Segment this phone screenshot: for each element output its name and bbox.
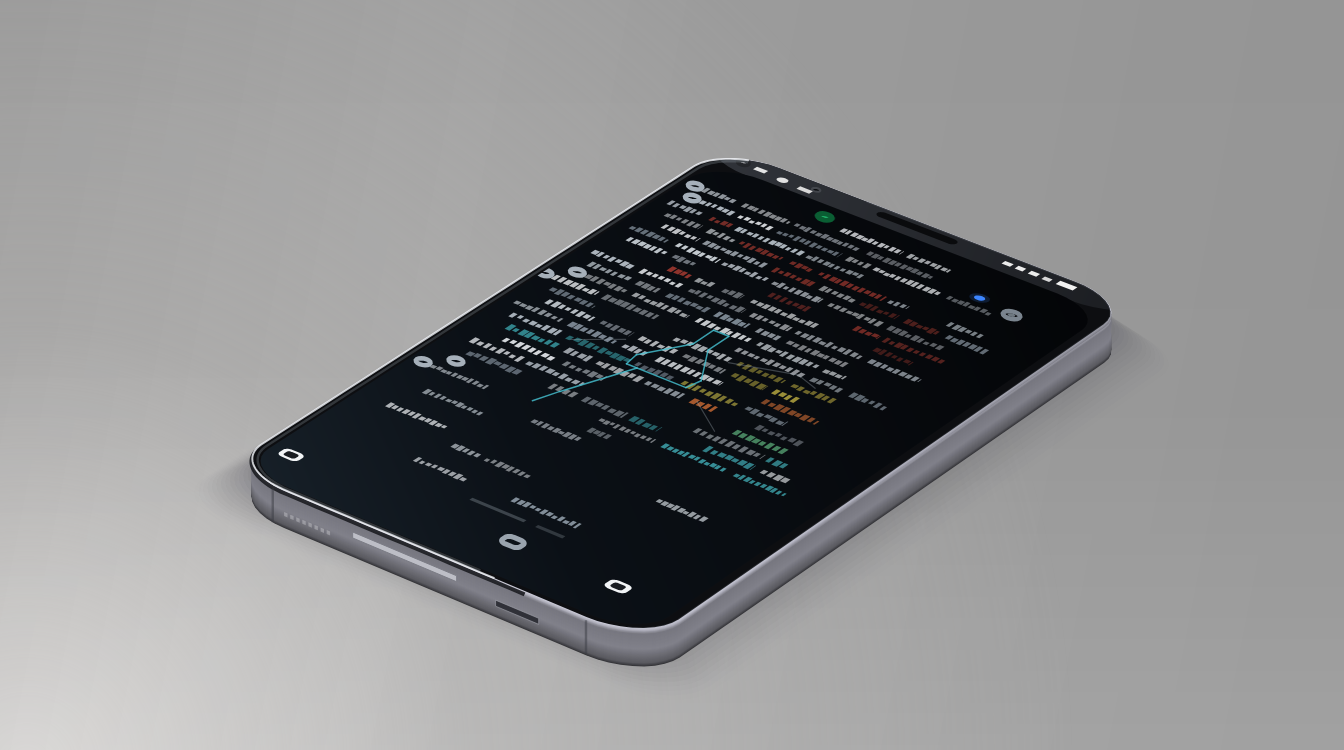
button[interactable]: Smartphone product render	[0, 0, 1344, 750]
